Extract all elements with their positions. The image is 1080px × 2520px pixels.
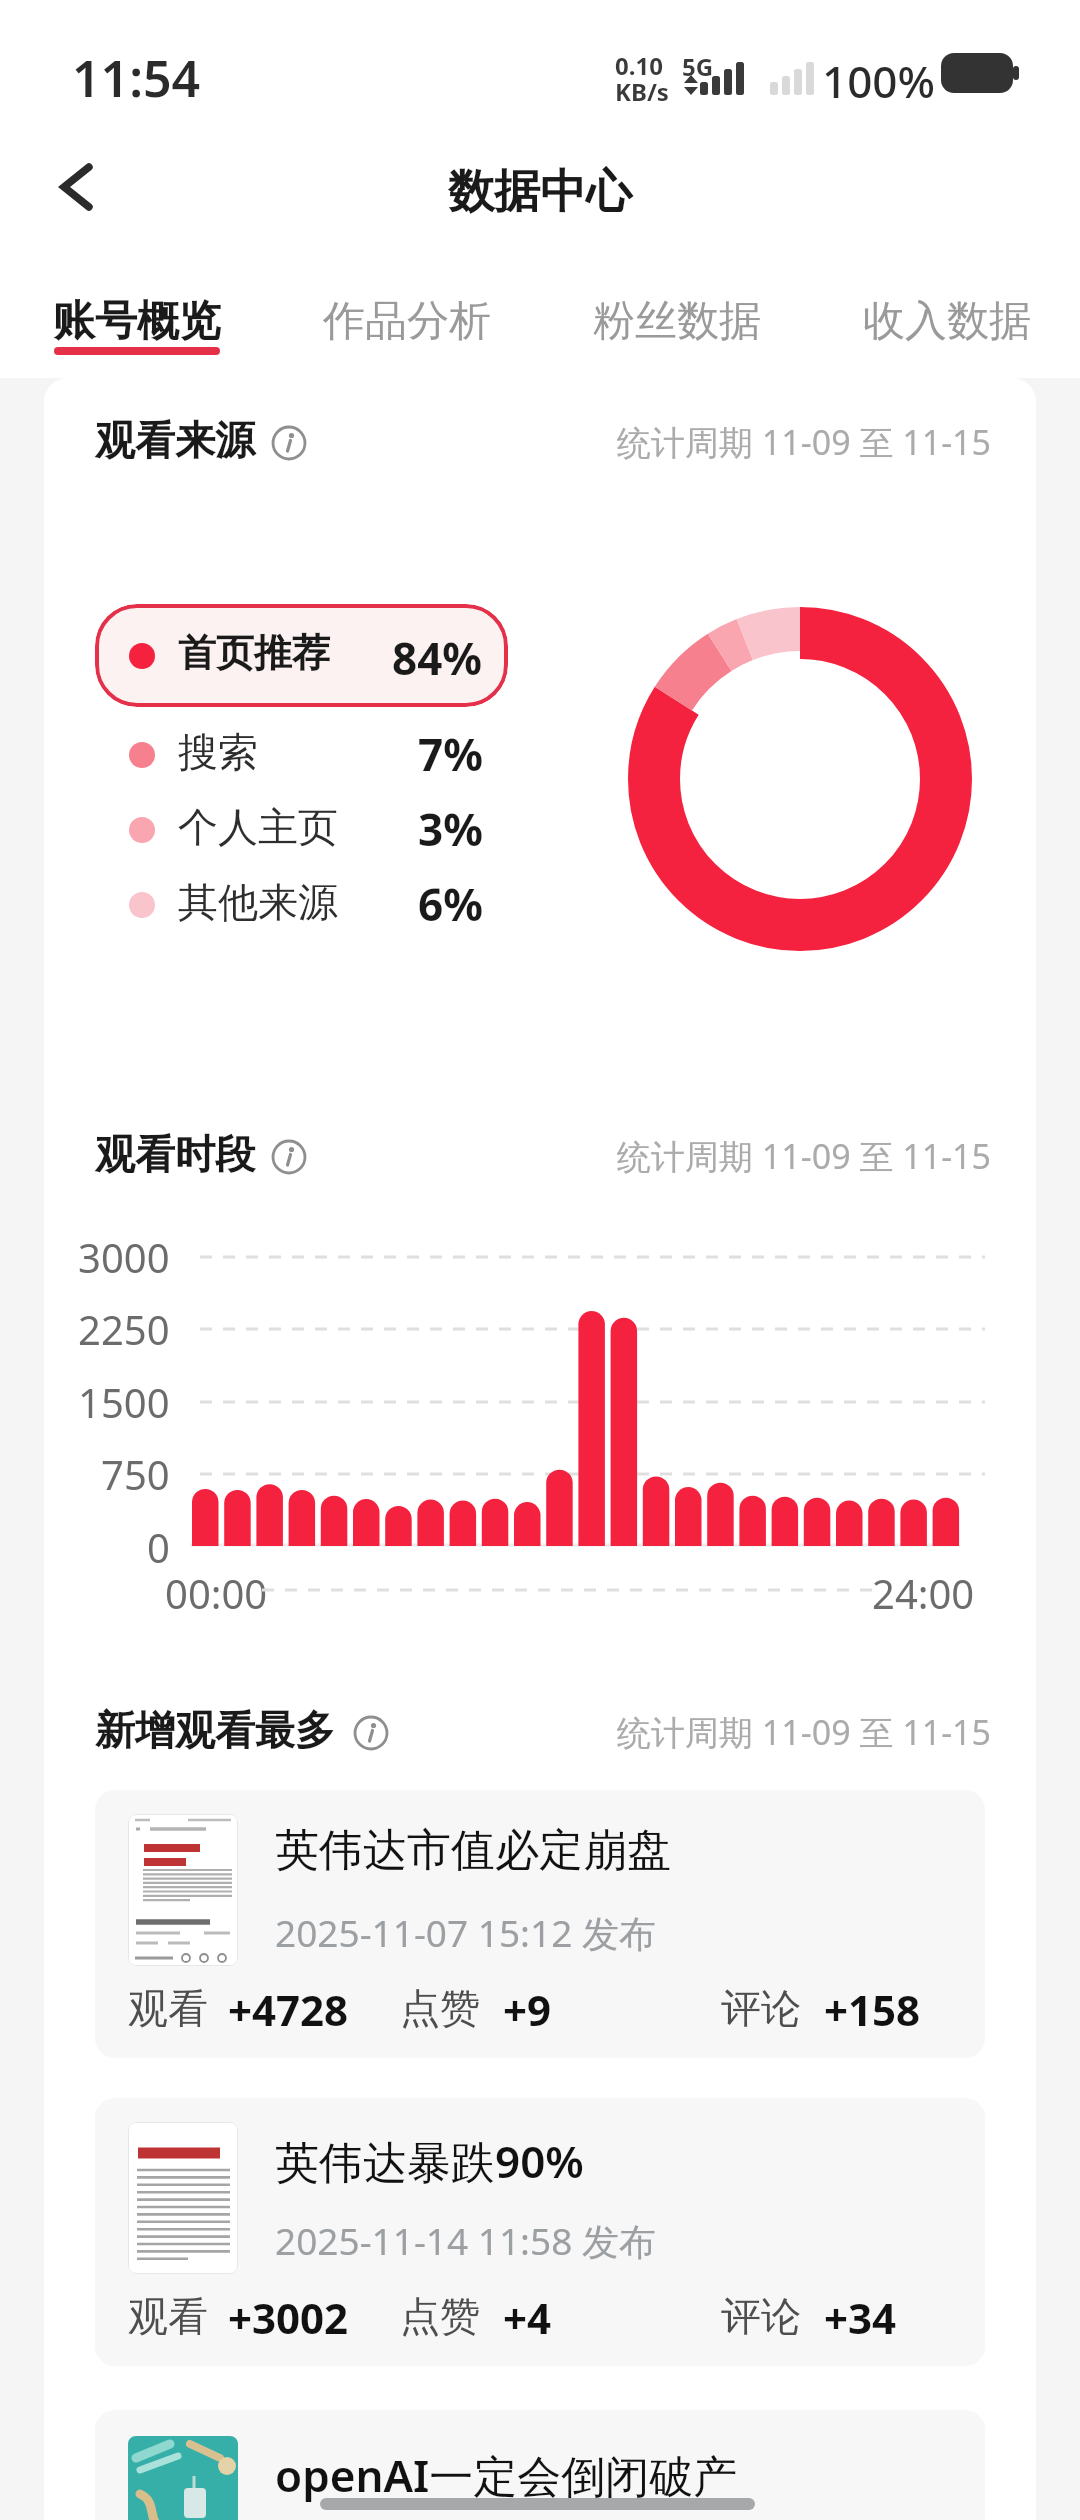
staticText: 其他来源 (178, 877, 338, 927)
button[interactable]: 粉丝数据 (542, 280, 812, 370)
staticText: 首页推荐 (178, 629, 330, 677)
staticText: 1500 (78, 1375, 170, 1429)
button[interactable] (95, 2410, 985, 2520)
staticText: +4728 (228, 1981, 349, 2038)
button[interactable]: 作品分析 (272, 280, 542, 370)
staticText: 个人主页 (178, 802, 338, 852)
staticText: 2025-11-14 11:58 发布 (275, 2215, 656, 2266)
staticText: 粉丝数据 (593, 295, 761, 348)
staticText: 24:00 (872, 1566, 975, 1620)
button[interactable] (95, 1790, 985, 2058)
staticText: 新增观看最多 (95, 1705, 335, 1755)
button[interactable]: 账号概览 (2, 280, 272, 370)
staticText: 英伟达暴跌90% (275, 2131, 584, 2191)
staticText: 2025-11-07 15:12 发布 (275, 1907, 656, 1958)
staticText: 观看 (128, 1983, 208, 2033)
staticText: 数据中心 (448, 163, 632, 221)
staticText: 00:00 (165, 1566, 268, 1620)
staticText: 统计周期 11-09 至 11-15 (617, 1709, 991, 1755)
staticText: 7% (418, 724, 483, 784)
button[interactable]: 收入数据 (812, 280, 1080, 370)
staticText: +4 (503, 2289, 552, 2346)
staticText: +9 (503, 1981, 552, 2038)
button[interactable]: 首页推荐 (95, 604, 508, 707)
staticText: +3002 (228, 2289, 349, 2346)
staticText: openAI一定会倒闭破产 (275, 2445, 738, 2505)
staticText: 点赞 (400, 2291, 480, 2341)
staticText: 3000 (78, 1230, 170, 1284)
staticText: 统计周期 11-09 至 11-15 (617, 1133, 991, 1179)
staticText: 观看 (128, 2291, 208, 2341)
staticText: 100% (822, 51, 935, 111)
staticText: 账号概览 (53, 295, 221, 348)
staticText: 3% (418, 799, 483, 859)
staticText: 0 (147, 1520, 170, 1574)
staticText: 统计周期 11-09 至 11-15 (617, 419, 991, 465)
staticText: 点赞 (400, 1983, 480, 2033)
staticText: 观看时段 (95, 1129, 255, 1179)
button[interactable] (95, 2098, 985, 2366)
staticText: 评论 (721, 2291, 801, 2341)
staticText: 750 (101, 1447, 170, 1501)
staticText: 84% (392, 628, 483, 688)
staticText: 作品分析 (323, 295, 491, 348)
staticText: 英伟达市值必定崩盘 (275, 1823, 671, 1878)
staticText: 0.10 KB/s (615, 49, 669, 108)
staticText: 6% (418, 874, 483, 934)
staticText: +34 (824, 2289, 897, 2346)
staticText: 评论 (721, 1983, 801, 2033)
staticText: 5G (682, 50, 714, 83)
button[interactable] (45, 150, 125, 230)
staticText: 收入数据 (863, 295, 1031, 348)
staticText: +158 (824, 1981, 921, 2038)
staticText: 观看来源 (95, 415, 255, 465)
staticText: 2250 (78, 1302, 170, 1356)
staticText: 搜索 (178, 727, 258, 777)
staticText: 11:54 (72, 44, 201, 112)
